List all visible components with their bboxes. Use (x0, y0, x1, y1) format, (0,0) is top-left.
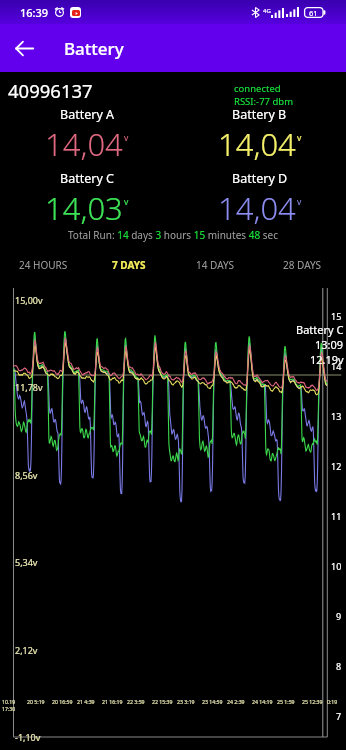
staticText: 61 (309, 8, 318, 18)
staticText: 40996137 (8, 78, 93, 103)
staticText: 24 HOURS (19, 258, 68, 272)
staticText: 14,03 (45, 187, 123, 229)
staticText: 22 3:59 (127, 698, 145, 705)
staticText: 8 (336, 660, 342, 672)
staticText: 12 (331, 460, 342, 472)
staticText: 22 15:39 (152, 698, 173, 705)
staticText: 8,56v (15, 469, 38, 481)
staticText: 25 1:59 (277, 698, 295, 705)
staticText: 23 14:59 (202, 698, 223, 705)
button[interactable]: 24 HOURS (0, 248, 86, 282)
staticText: v (297, 196, 302, 208)
button[interactable]: 28 DAYS (259, 248, 346, 282)
staticText: connected (234, 82, 281, 95)
staticText: Battery C (296, 322, 344, 337)
staticText: 23 3:19 (177, 698, 195, 705)
staticText: 13 (331, 410, 342, 422)
staticText: v (124, 132, 129, 144)
staticText: 14 (331, 360, 342, 372)
staticText: 11 (331, 510, 342, 522)
staticText: 10.19 17:30 (2, 698, 27, 712)
staticText: 2,12v (15, 644, 38, 656)
staticText: Battery A (60, 106, 114, 123)
staticText: 10 (331, 560, 342, 572)
staticText: 14,04 (218, 187, 296, 229)
staticText: Battery (64, 37, 124, 60)
staticText: v (124, 196, 129, 208)
staticText: -1,10v (15, 731, 41, 743)
staticText: 5,34v (15, 556, 38, 568)
staticText: Battery D (232, 170, 288, 187)
staticText: Battery B (232, 106, 287, 123)
button[interactable]: 14 DAYS (172, 248, 259, 282)
staticText: 16:39 (20, 5, 49, 20)
staticText: 7 (336, 710, 342, 722)
staticText: 24 2:39 (227, 698, 245, 705)
staticText: 13:09 (315, 337, 344, 352)
staticText: 15 (331, 310, 342, 322)
staticText: 25 12:39 (302, 698, 323, 705)
staticText: 21 4:39 (77, 698, 95, 705)
button[interactable]: Back (0, 24, 48, 72)
staticText: 7 DAYS (112, 258, 146, 272)
staticText: v (297, 132, 302, 144)
staticText: 15,00v (15, 294, 43, 306)
staticText: 12.19v (310, 352, 344, 367)
staticText: 20 5:19 (27, 698, 45, 705)
staticText: 4G (263, 7, 271, 14)
staticText: RSSI:-77 dbm (234, 95, 294, 108)
staticText: Battery C (60, 170, 114, 187)
staticText: 20 16:59 (52, 698, 73, 705)
staticText: 14 DAYS (196, 258, 235, 272)
staticText: 9 (336, 610, 342, 622)
staticText: 24 14:19 (252, 698, 273, 705)
staticText: 28 DAYS (283, 258, 322, 272)
staticText: 21 16:19 (102, 698, 123, 705)
staticText: 14,04 (218, 123, 296, 165)
staticText: 0:19 (327, 698, 338, 705)
staticText: Total Run: 14 days 3 hours 15 minutes 48… (68, 228, 278, 242)
button[interactable]: 7 DAYS (86, 248, 172, 282)
staticText: 11,78v (15, 381, 43, 393)
staticText: 14,04 (45, 123, 123, 165)
